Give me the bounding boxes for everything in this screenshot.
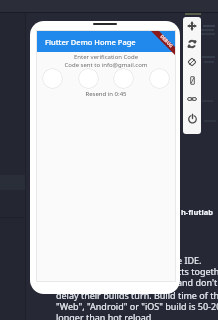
staticText: h-flutlab [181, 207, 214, 217]
button[interactable]: Power [183, 109, 201, 127]
staticText: cts together [177, 265, 218, 277]
staticText: DEBUG [159, 33, 175, 49]
button[interactable] [42, 68, 63, 89]
staticText: e IDE. [177, 254, 202, 266]
staticText: and don't [177, 276, 218, 288]
button[interactable]: Screen rotation [183, 53, 201, 71]
staticText: Code sent to info@gmail.com [37, 61, 175, 69]
button[interactable]: Move [183, 17, 201, 35]
staticText: delay their builds turn. Build time of t… [56, 289, 218, 301]
staticText: "Web", "Android" or "iOS" build is 50-20… [56, 300, 218, 312]
button[interactable] [113, 68, 134, 89]
staticText: Flutter Demo Home Page [45, 37, 136, 47]
staticText: longer than hot reload [56, 311, 152, 320]
button[interactable]: Device frame [183, 71, 201, 89]
staticText: Enter verification Code [37, 53, 175, 61]
button[interactable] [78, 68, 99, 89]
button[interactable]: Flutter Demo Home Page [37, 31, 175, 52]
button[interactable] [149, 68, 170, 89]
staticText: Resend in 0:45 [37, 90, 175, 98]
button[interactable]: Rotate [183, 35, 201, 53]
button[interactable]: Link [183, 90, 201, 108]
